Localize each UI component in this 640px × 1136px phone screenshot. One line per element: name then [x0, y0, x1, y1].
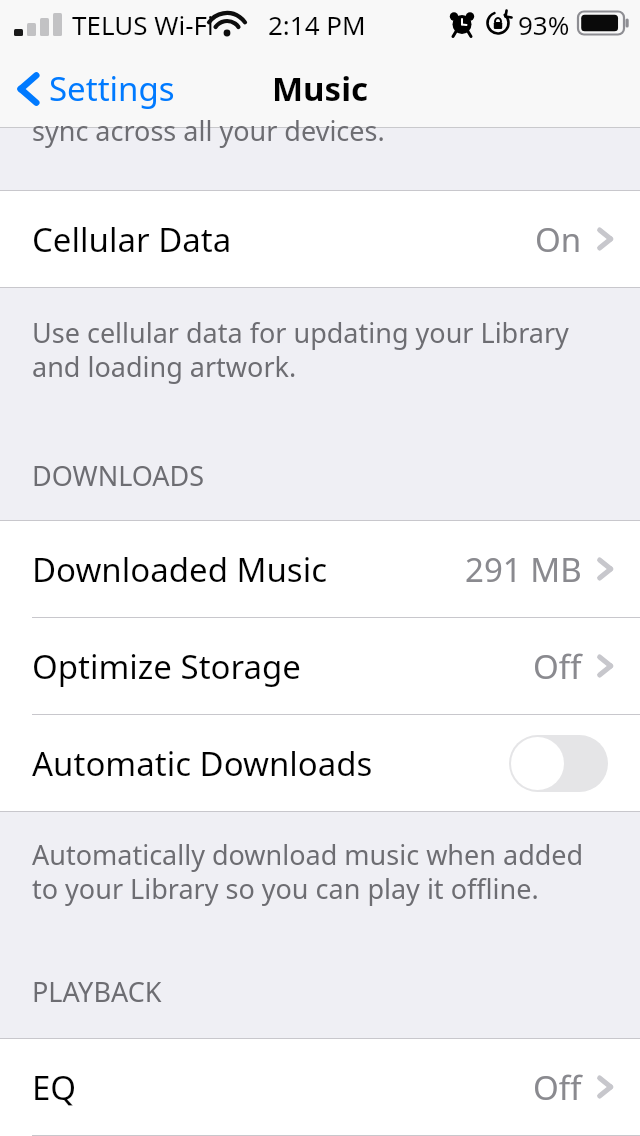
staticText: 2:14 PM: [268, 7, 366, 42]
staticText: Optimize Storage: [32, 644, 301, 689]
staticText: EQ: [32, 1065, 77, 1110]
staticText: PLAYBACK: [32, 973, 162, 1010]
staticText: Automatically download music when added …: [32, 836, 606, 907]
button[interactable]: Optimize Storage: [0, 618, 640, 714]
staticText: Use cellular data for updating your Libr…: [32, 314, 606, 385]
button[interactable]: Settings: [0, 60, 187, 117]
staticText: Music: [272, 66, 369, 111]
button[interactable]: Cellular Data: [0, 191, 640, 287]
staticText: Automatic Downloads: [32, 741, 373, 786]
staticText: On: [535, 217, 582, 262]
button[interactable]: Automatic Downloads: [0, 715, 640, 811]
staticText: Off: [533, 1065, 582, 1110]
button[interactable]: Automatic Downloads toggle, off: [509, 735, 608, 792]
button[interactable]: Downloaded Music: [0, 521, 640, 617]
staticText: 93%: [518, 7, 570, 42]
staticText: sync across all your devices.: [32, 112, 385, 149]
staticText: TELUS Wi-Fi: [72, 7, 214, 42]
button[interactable]: EQ: [0, 1039, 640, 1135]
staticText: Downloaded Music: [32, 547, 327, 592]
staticText: Cellular Data: [32, 217, 232, 262]
staticText: DOWNLOADS: [32, 457, 205, 494]
staticText: Off: [533, 644, 582, 689]
staticText: Settings: [49, 66, 175, 111]
staticText: 291 MB: [465, 547, 582, 592]
